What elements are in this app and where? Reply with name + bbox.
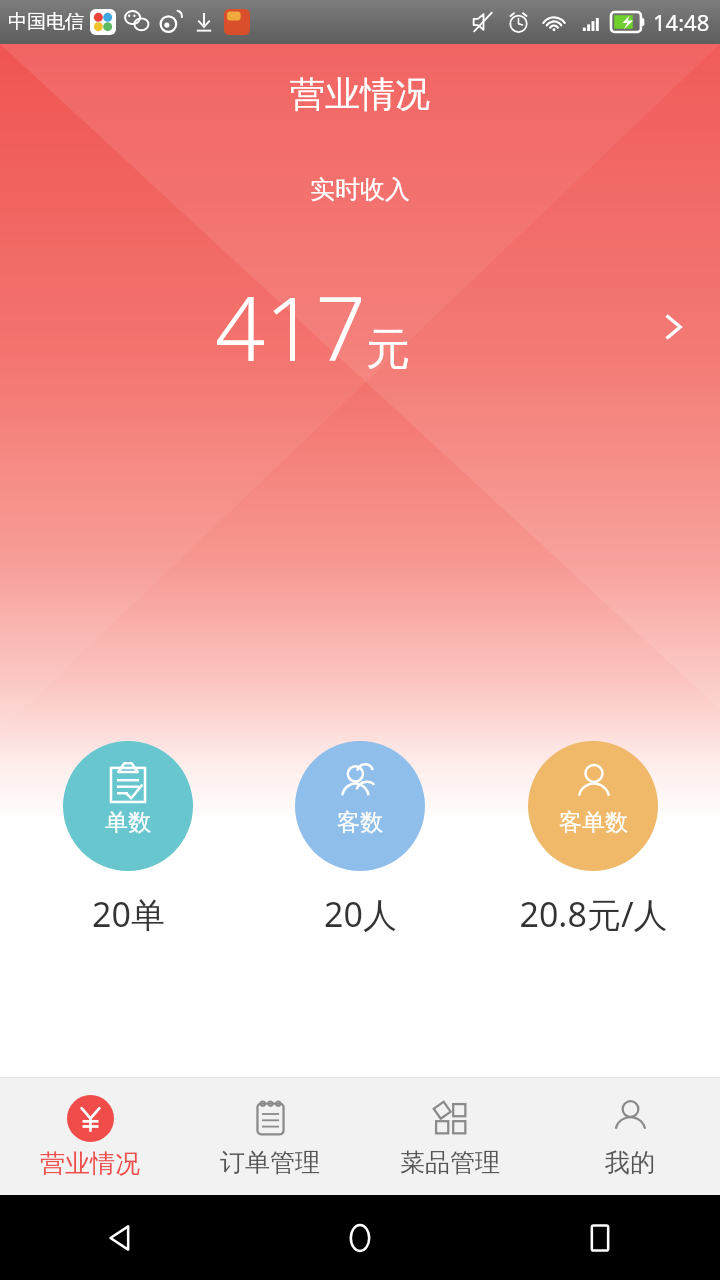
staticText: 订单管理 — [220, 1147, 320, 1178]
staticText: 14:48 — [653, 7, 710, 37]
button[interactable]: 菜品管理 — [360, 1078, 540, 1195]
staticText: 实时收入 — [310, 174, 410, 205]
button[interactable]: 订单管理 — [180, 1078, 360, 1195]
button[interactable]: 417 — [0, 267, 720, 387]
staticText: 元 — [366, 322, 410, 377]
other: Recents — [583, 1221, 617, 1255]
other: 查看收入详情 — [625, 267, 720, 387]
other: Home — [343, 1221, 377, 1255]
staticText: 营业情况 — [40, 1148, 140, 1179]
staticText: 客单数 — [559, 808, 628, 837]
staticText: 单数 — [105, 808, 151, 837]
staticText: 417 — [215, 267, 366, 387]
button[interactable]: 客数 — [255, 741, 465, 937]
button[interactable]: 营业情况 — [0, 1078, 180, 1195]
button[interactable]: 我的 — [540, 1078, 720, 1195]
staticText: 营业情况 — [290, 72, 430, 116]
staticText: 中国电信 — [8, 10, 84, 34]
button[interactable]: 单数 — [23, 741, 233, 937]
staticText: 20单 — [92, 891, 165, 937]
staticText: 菜品管理 — [400, 1147, 500, 1178]
other: Back — [103, 1221, 137, 1255]
staticText: 20.8元/人 — [519, 891, 668, 937]
staticText: 我的 — [605, 1147, 655, 1178]
staticText: 20人 — [324, 891, 397, 937]
staticText: 客数 — [337, 808, 383, 837]
button[interactable]: 客单数 — [488, 741, 698, 937]
